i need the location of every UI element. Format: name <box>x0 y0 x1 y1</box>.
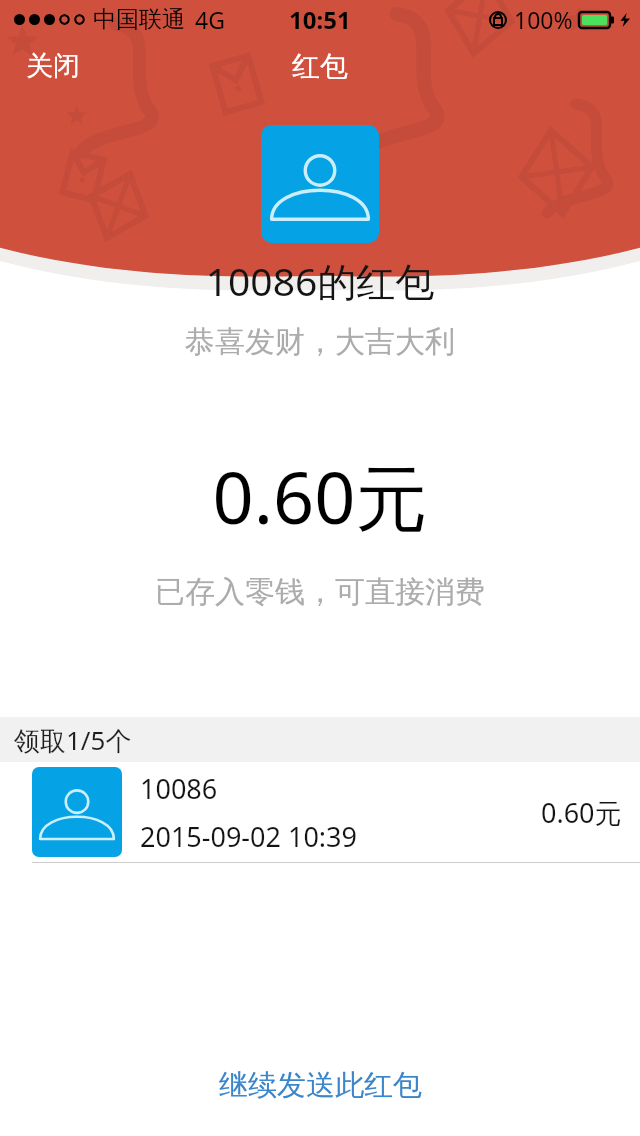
staticText: 10086的红包 <box>0 254 640 307</box>
staticText: 中国联通 <box>93 5 185 34</box>
button[interactable]: 10086 <box>0 762 640 862</box>
button[interactable]: 关闭 <box>14 41 92 91</box>
staticText: 10086 <box>140 770 218 807</box>
staticText: 4G <box>195 4 225 35</box>
staticText: 领取1/5个 <box>14 722 132 758</box>
staticText: 100% <box>514 4 573 35</box>
staticText: 继续发送此红包 <box>219 1067 422 1104</box>
staticText: 10:51 <box>289 3 351 36</box>
button[interactable]: 继续发送此红包 <box>191 1055 450 1116</box>
staticText: 2015-09-02 10:39 <box>140 818 357 855</box>
staticText: 关闭 <box>26 49 80 83</box>
staticText: 恭喜发财，大吉大利 <box>0 323 640 361</box>
staticText: 0.60元 <box>0 447 640 545</box>
staticText: 0.60元 <box>541 794 622 831</box>
staticText: 已存入零钱，可直接消费 <box>0 573 640 611</box>
button[interactable]: Sender avatar <box>261 125 379 243</box>
staticText: 红包 <box>292 49 348 84</box>
